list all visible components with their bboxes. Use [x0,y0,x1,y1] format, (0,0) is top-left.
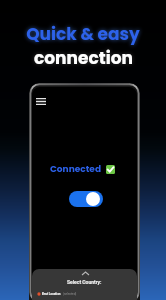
staticText: Best Location [42,292,61,296]
staticText: Quick & easy [26,22,140,46]
button[interactable]: Menu [32,95,50,108]
staticText: (selected) [63,292,77,296]
staticText: Connected [50,163,102,176]
button[interactable]: VPN connection toggle [69,191,103,207]
staticText: connection [34,46,133,70]
button[interactable]: Select Country: [32,269,137,300]
staticText: Quick & easy [26,22,140,46]
staticText: connection [34,46,133,70]
staticText: Select Country: [67,279,102,285]
